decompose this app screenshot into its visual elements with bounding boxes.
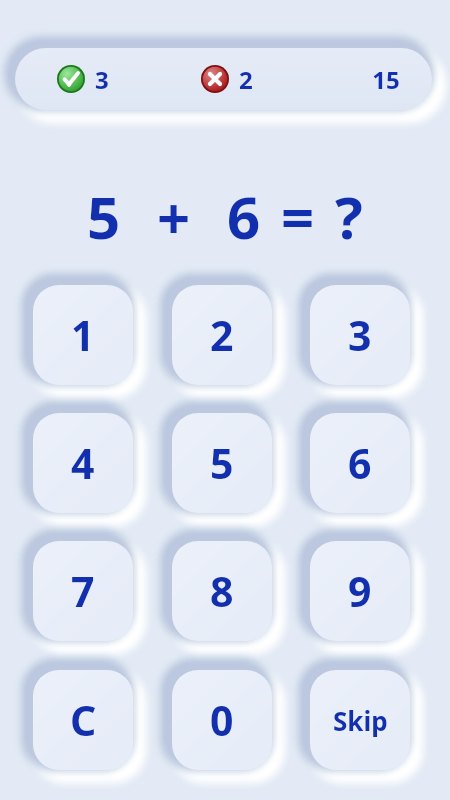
staticText: 5	[210, 435, 234, 491]
staticText: +	[157, 177, 191, 256]
staticText: C	[70, 692, 97, 748]
button[interactable]: Skip	[310, 670, 410, 770]
button[interactable]: 6	[310, 413, 410, 513]
staticText: Skip	[333, 703, 388, 738]
staticText: 4	[71, 435, 95, 491]
other: Correct answers	[57, 65, 85, 93]
staticText: 3	[348, 307, 372, 363]
staticText: 9	[348, 563, 372, 619]
staticText: 1	[71, 307, 95, 363]
staticText: 2	[210, 307, 234, 363]
button[interactable]: Correct answers	[15, 48, 432, 110]
staticText: 7	[71, 563, 95, 619]
staticText: 2	[239, 63, 253, 96]
staticText: =	[281, 177, 315, 256]
button[interactable]: 1	[33, 285, 133, 385]
staticText: 6	[348, 435, 372, 491]
button[interactable]: 8	[172, 541, 272, 641]
staticText: ?	[335, 177, 363, 256]
staticText: 8	[210, 563, 234, 619]
staticText: 6	[227, 177, 261, 256]
staticText: 15	[362, 63, 410, 96]
other: Wrong answers	[201, 65, 229, 93]
button[interactable]: C	[33, 670, 133, 770]
button[interactable]: 3	[310, 285, 410, 385]
button[interactable]: 2	[172, 285, 272, 385]
staticText: 0	[210, 692, 234, 748]
staticText: 5	[87, 177, 121, 256]
button[interactable]: 5	[172, 413, 272, 513]
staticText: 3	[95, 63, 109, 96]
button[interactable]: 9	[310, 541, 410, 641]
button[interactable]: 7	[33, 541, 133, 641]
button[interactable]: 4	[33, 413, 133, 513]
button[interactable]: 0	[172, 670, 272, 770]
